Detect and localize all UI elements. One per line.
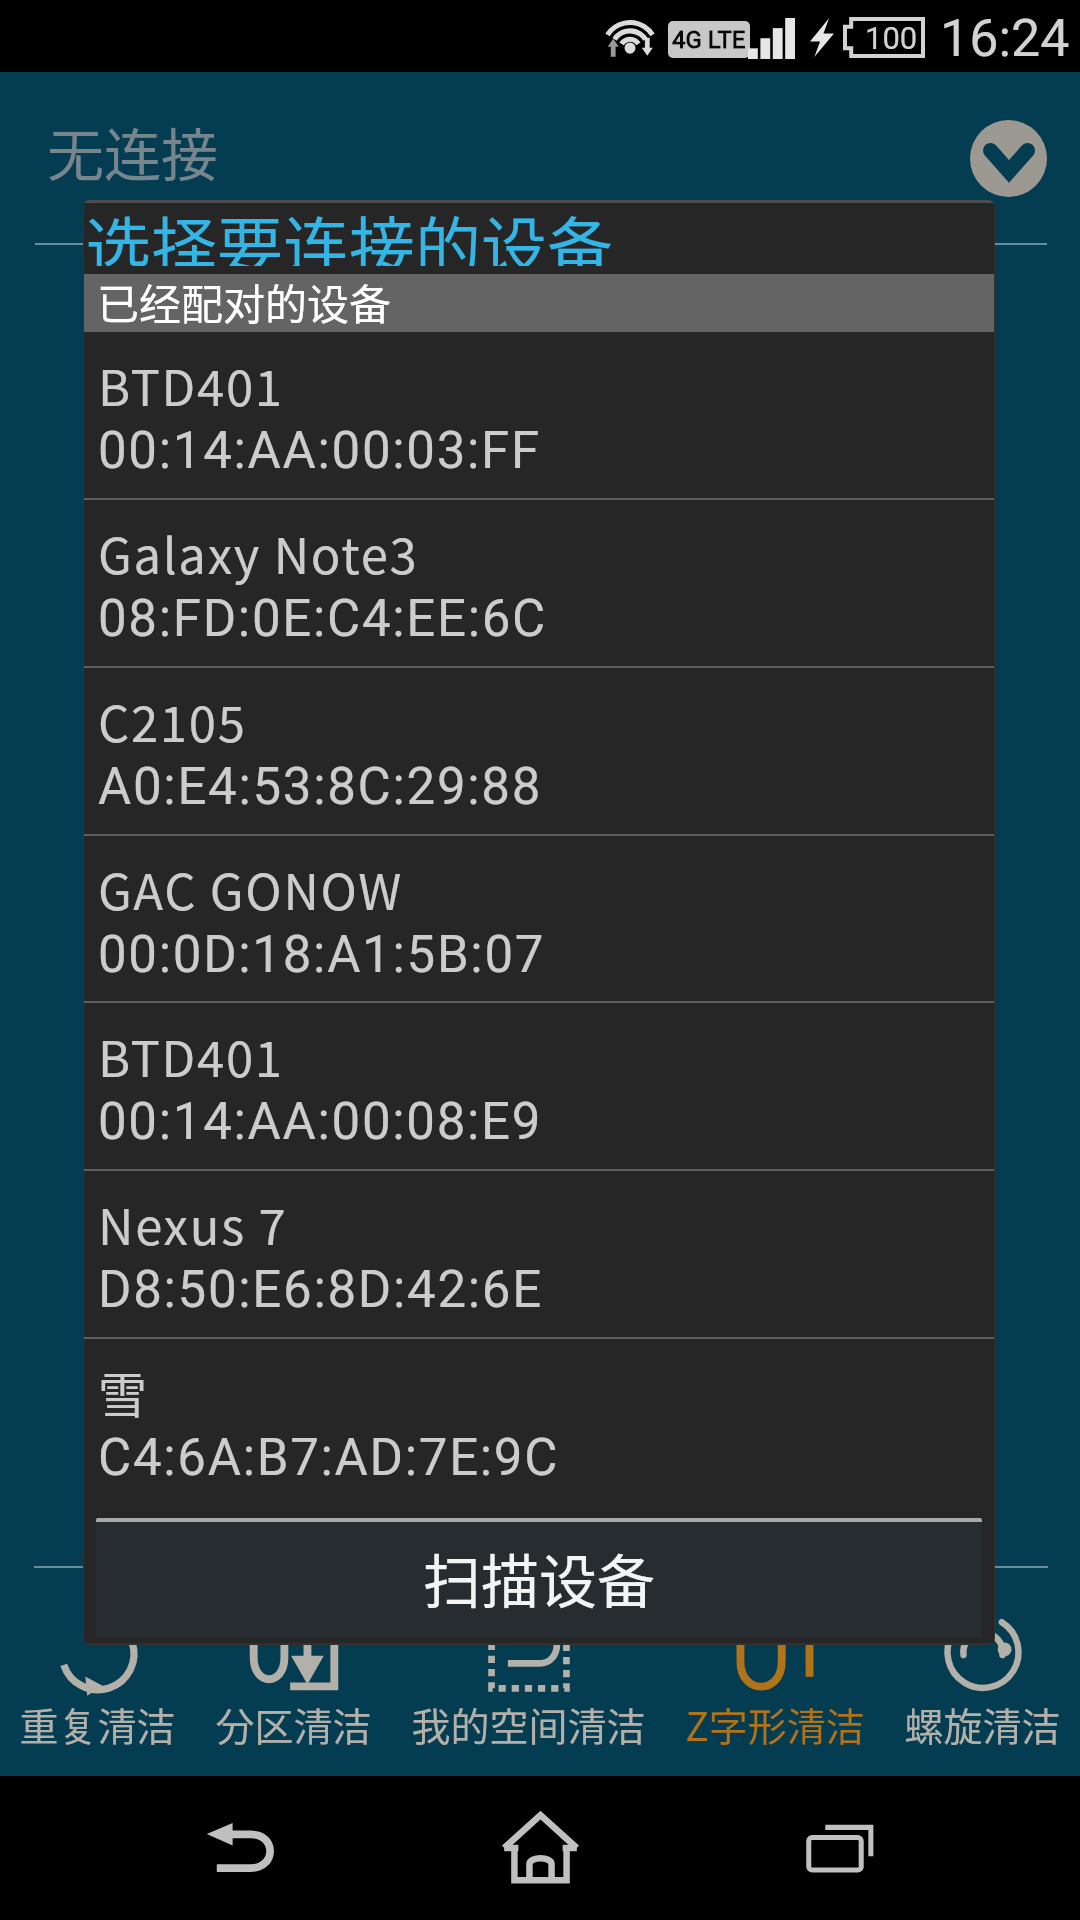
button[interactable]: Z字形清洁 bbox=[685, 1600, 865, 1745]
button[interactable]: 雪 bbox=[84, 1339, 994, 1505]
button[interactable]: GAC GONOW bbox=[84, 836, 994, 1001]
staticText: GAC GONOW bbox=[98, 853, 403, 924]
button[interactable]: Back bbox=[170, 1776, 314, 1920]
staticText: 螺旋清洁 bbox=[904, 1696, 1061, 1745]
staticText: 16:24 bbox=[940, 8, 1070, 69]
staticText: A0:E4:53:8C:29:88 bbox=[98, 757, 543, 817]
button[interactable]: 扫描设备 bbox=[96, 1518, 982, 1637]
staticText: 已经配对的设备 bbox=[97, 271, 392, 329]
staticText: 分区清洁 bbox=[215, 1696, 372, 1745]
button[interactable]: C2105 bbox=[84, 668, 994, 834]
staticText: 选择要连接的设备 bbox=[85, 200, 613, 266]
button[interactable]: 分区清洁 bbox=[215, 1600, 372, 1745]
staticText: 00:14:AA:00:08:E9 bbox=[98, 1092, 543, 1152]
staticText: 无连接 bbox=[47, 110, 218, 193]
button[interactable]: Recent apps bbox=[768, 1776, 912, 1920]
staticText: 我的空间清洁 bbox=[411, 1696, 646, 1745]
button[interactable]: BTD401 bbox=[84, 1003, 994, 1169]
staticText: 重复清洁 bbox=[19, 1696, 176, 1745]
staticText: 扫描设备 bbox=[423, 1536, 656, 1620]
staticText: 08:FD:0E:C4:EE:6C bbox=[98, 589, 547, 649]
staticText: 雪 bbox=[98, 1356, 149, 1427]
button[interactable]: Expand connection bbox=[970, 120, 1047, 197]
staticText: 00:0D:18:A1:5B:07 bbox=[98, 925, 546, 985]
button[interactable]: Home bbox=[468, 1776, 612, 1920]
staticText: C2105 bbox=[98, 685, 247, 756]
staticText: Galaxy Note3 bbox=[98, 517, 419, 588]
staticText: 00:14:AA:00:03:FF bbox=[98, 421, 541, 481]
staticText: BTD401 bbox=[98, 349, 284, 420]
button[interactable]: 我的空间清洁 bbox=[411, 1600, 646, 1745]
staticText: C4:6A:B7:AD:7E:9C bbox=[98, 1428, 560, 1488]
button[interactable]: Nexus 7 bbox=[84, 1171, 994, 1337]
staticText: Z字形清洁 bbox=[685, 1696, 865, 1745]
button[interactable]: 螺旋清洁 bbox=[904, 1600, 1061, 1745]
button[interactable]: Galaxy Note3 bbox=[84, 500, 994, 666]
staticText: D8:50:E6:8D:42:6E bbox=[98, 1260, 543, 1320]
staticText: 4G LTE bbox=[672, 26, 746, 54]
staticText: 100 bbox=[865, 20, 918, 56]
staticText: BTD401 bbox=[98, 1020, 284, 1091]
button[interactable]: 重复清洁 bbox=[19, 1600, 176, 1745]
button[interactable]: BTD401 bbox=[84, 332, 994, 498]
staticText: Nexus 7 bbox=[98, 1188, 288, 1259]
